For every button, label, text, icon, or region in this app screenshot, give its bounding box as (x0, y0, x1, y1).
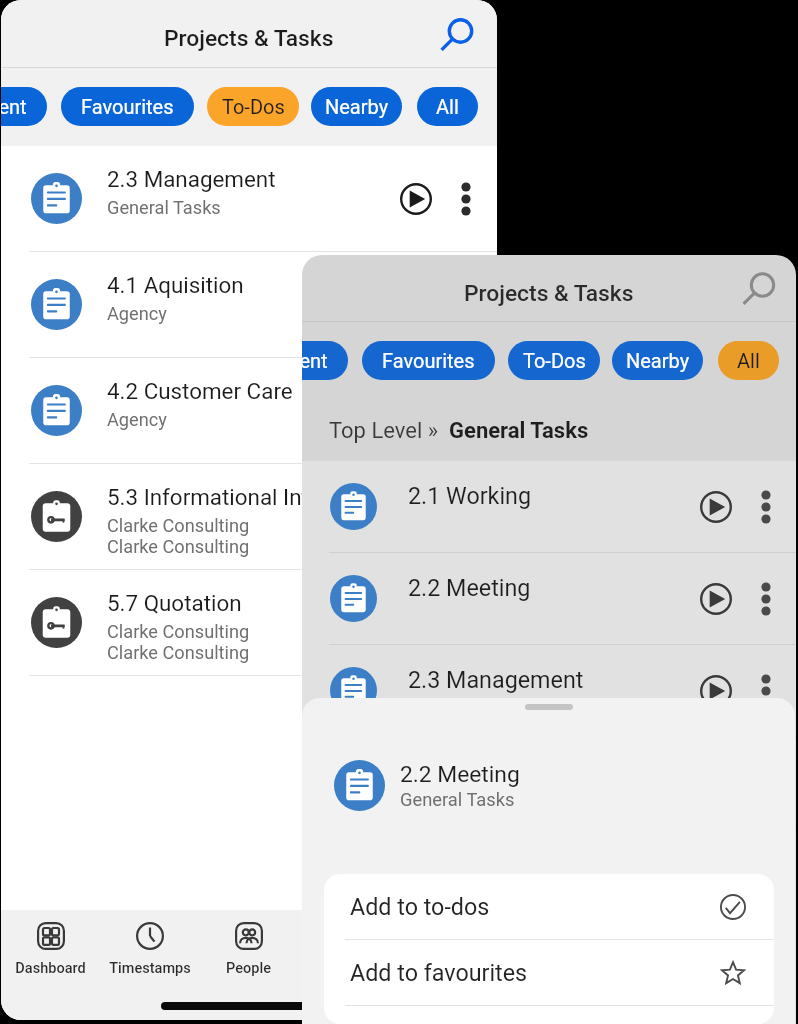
staticText: 2.4 Research (408, 758, 693, 785)
staticText: Clarke Consulting (107, 642, 250, 663)
button[interactable]: Start (693, 668, 739, 714)
button[interactable]: To-Dos (207, 87, 299, 126)
staticText: More (430, 960, 464, 977)
staticText: Recent (1, 95, 27, 118)
staticText: All (737, 349, 760, 372)
button[interactable]: People (199, 912, 298, 977)
staticText: To-Dos (222, 95, 285, 118)
button[interactable]: To-Dos (508, 341, 600, 380)
button[interactable]: More options (750, 583, 782, 615)
button[interactable]: Search (742, 270, 778, 306)
button[interactable]: 2.4 Research (302, 737, 796, 828)
button[interactable]: 4.1 Aquisition (1, 252, 497, 357)
staticText: Timestamps (109, 960, 191, 977)
button[interactable]: Add to favourites (324, 940, 774, 1005)
staticText: 4.1 Aquisition (107, 272, 244, 298)
staticText: General Tasks (107, 197, 221, 218)
button[interactable]: More options (450, 183, 482, 215)
staticText: Projects & Tasks (164, 25, 334, 52)
button[interactable]: 2.3 Management (302, 645, 796, 736)
button[interactable]: Recent (1, 87, 47, 126)
button[interactable]: 2.3 Management (1, 146, 497, 251)
staticText: To-Dos (523, 349, 586, 372)
staticText: 2.2 Meeting (408, 574, 693, 601)
staticText: 5.3 Informational Interview (107, 484, 374, 510)
button[interactable]: Start (393, 176, 439, 222)
staticText: Projects (321, 960, 375, 977)
button[interactable]: More options (750, 491, 782, 523)
button[interactable]: Start (693, 576, 739, 622)
button[interactable]: Add to to-dos (324, 874, 774, 939)
button[interactable]: Favourites (61, 87, 194, 126)
button[interactable]: 2.1 Working (302, 461, 796, 552)
button[interactable]: Projects (298, 912, 397, 977)
staticText: Clarke Consulting (107, 515, 250, 536)
staticText: Add to favourites (350, 959, 717, 986)
staticText: Agency (107, 409, 167, 430)
button[interactable]: Top Level » (329, 418, 589, 444)
button[interactable]: Timestamps (100, 912, 199, 977)
button[interactable]: All (718, 341, 779, 380)
staticText: 2.2 Meeting (400, 761, 520, 788)
staticText: 2.3 Management (107, 166, 276, 192)
button[interactable]: All (417, 87, 478, 126)
button[interactable]: Nearby (612, 341, 703, 380)
button[interactable]: Dashboard (1, 912, 100, 977)
staticText: Clarke Consulting (107, 621, 250, 642)
staticText: All (436, 95, 459, 118)
button[interactable]: 5.3 Informational Interview (1, 464, 497, 569)
staticText: People (226, 960, 271, 977)
staticText: Nearby (626, 349, 690, 372)
staticText: 4.2 Customer Care (107, 378, 293, 404)
staticText: Clarke Consulting (107, 536, 250, 557)
button[interactable]: 5.7 Quotation (1, 570, 497, 675)
staticText: Add to to-dos (350, 893, 717, 920)
button[interactable]: Start (693, 484, 739, 530)
staticText: 2.3 Management (408, 666, 693, 693)
staticText: Dashboard (15, 960, 86, 977)
staticText: Favourites (382, 349, 475, 372)
button[interactable]: More (397, 912, 496, 977)
staticText: Favourites (81, 95, 174, 118)
button[interactable]: 2.2 Meeting (302, 553, 796, 644)
staticText: 2.1 Working (408, 482, 693, 509)
button[interactable]: Favourites (362, 341, 495, 380)
staticText: 5.7 Quotation (107, 590, 242, 616)
staticText: Nearby (325, 95, 389, 118)
staticText: Projects & Tasks (464, 280, 634, 307)
staticText: Agency (107, 303, 167, 324)
staticText: General Tasks (449, 418, 589, 444)
staticText: Top Level » (329, 418, 439, 444)
staticText: General Tasks (400, 789, 515, 810)
button[interactable]: More options (750, 675, 782, 707)
button[interactable]: 4.2 Customer Care (1, 358, 497, 463)
button[interactable]: Nearby (311, 87, 402, 126)
staticText: Recent (302, 349, 328, 372)
button[interactable]: Search (440, 16, 476, 52)
button[interactable]: Recent (302, 341, 348, 380)
